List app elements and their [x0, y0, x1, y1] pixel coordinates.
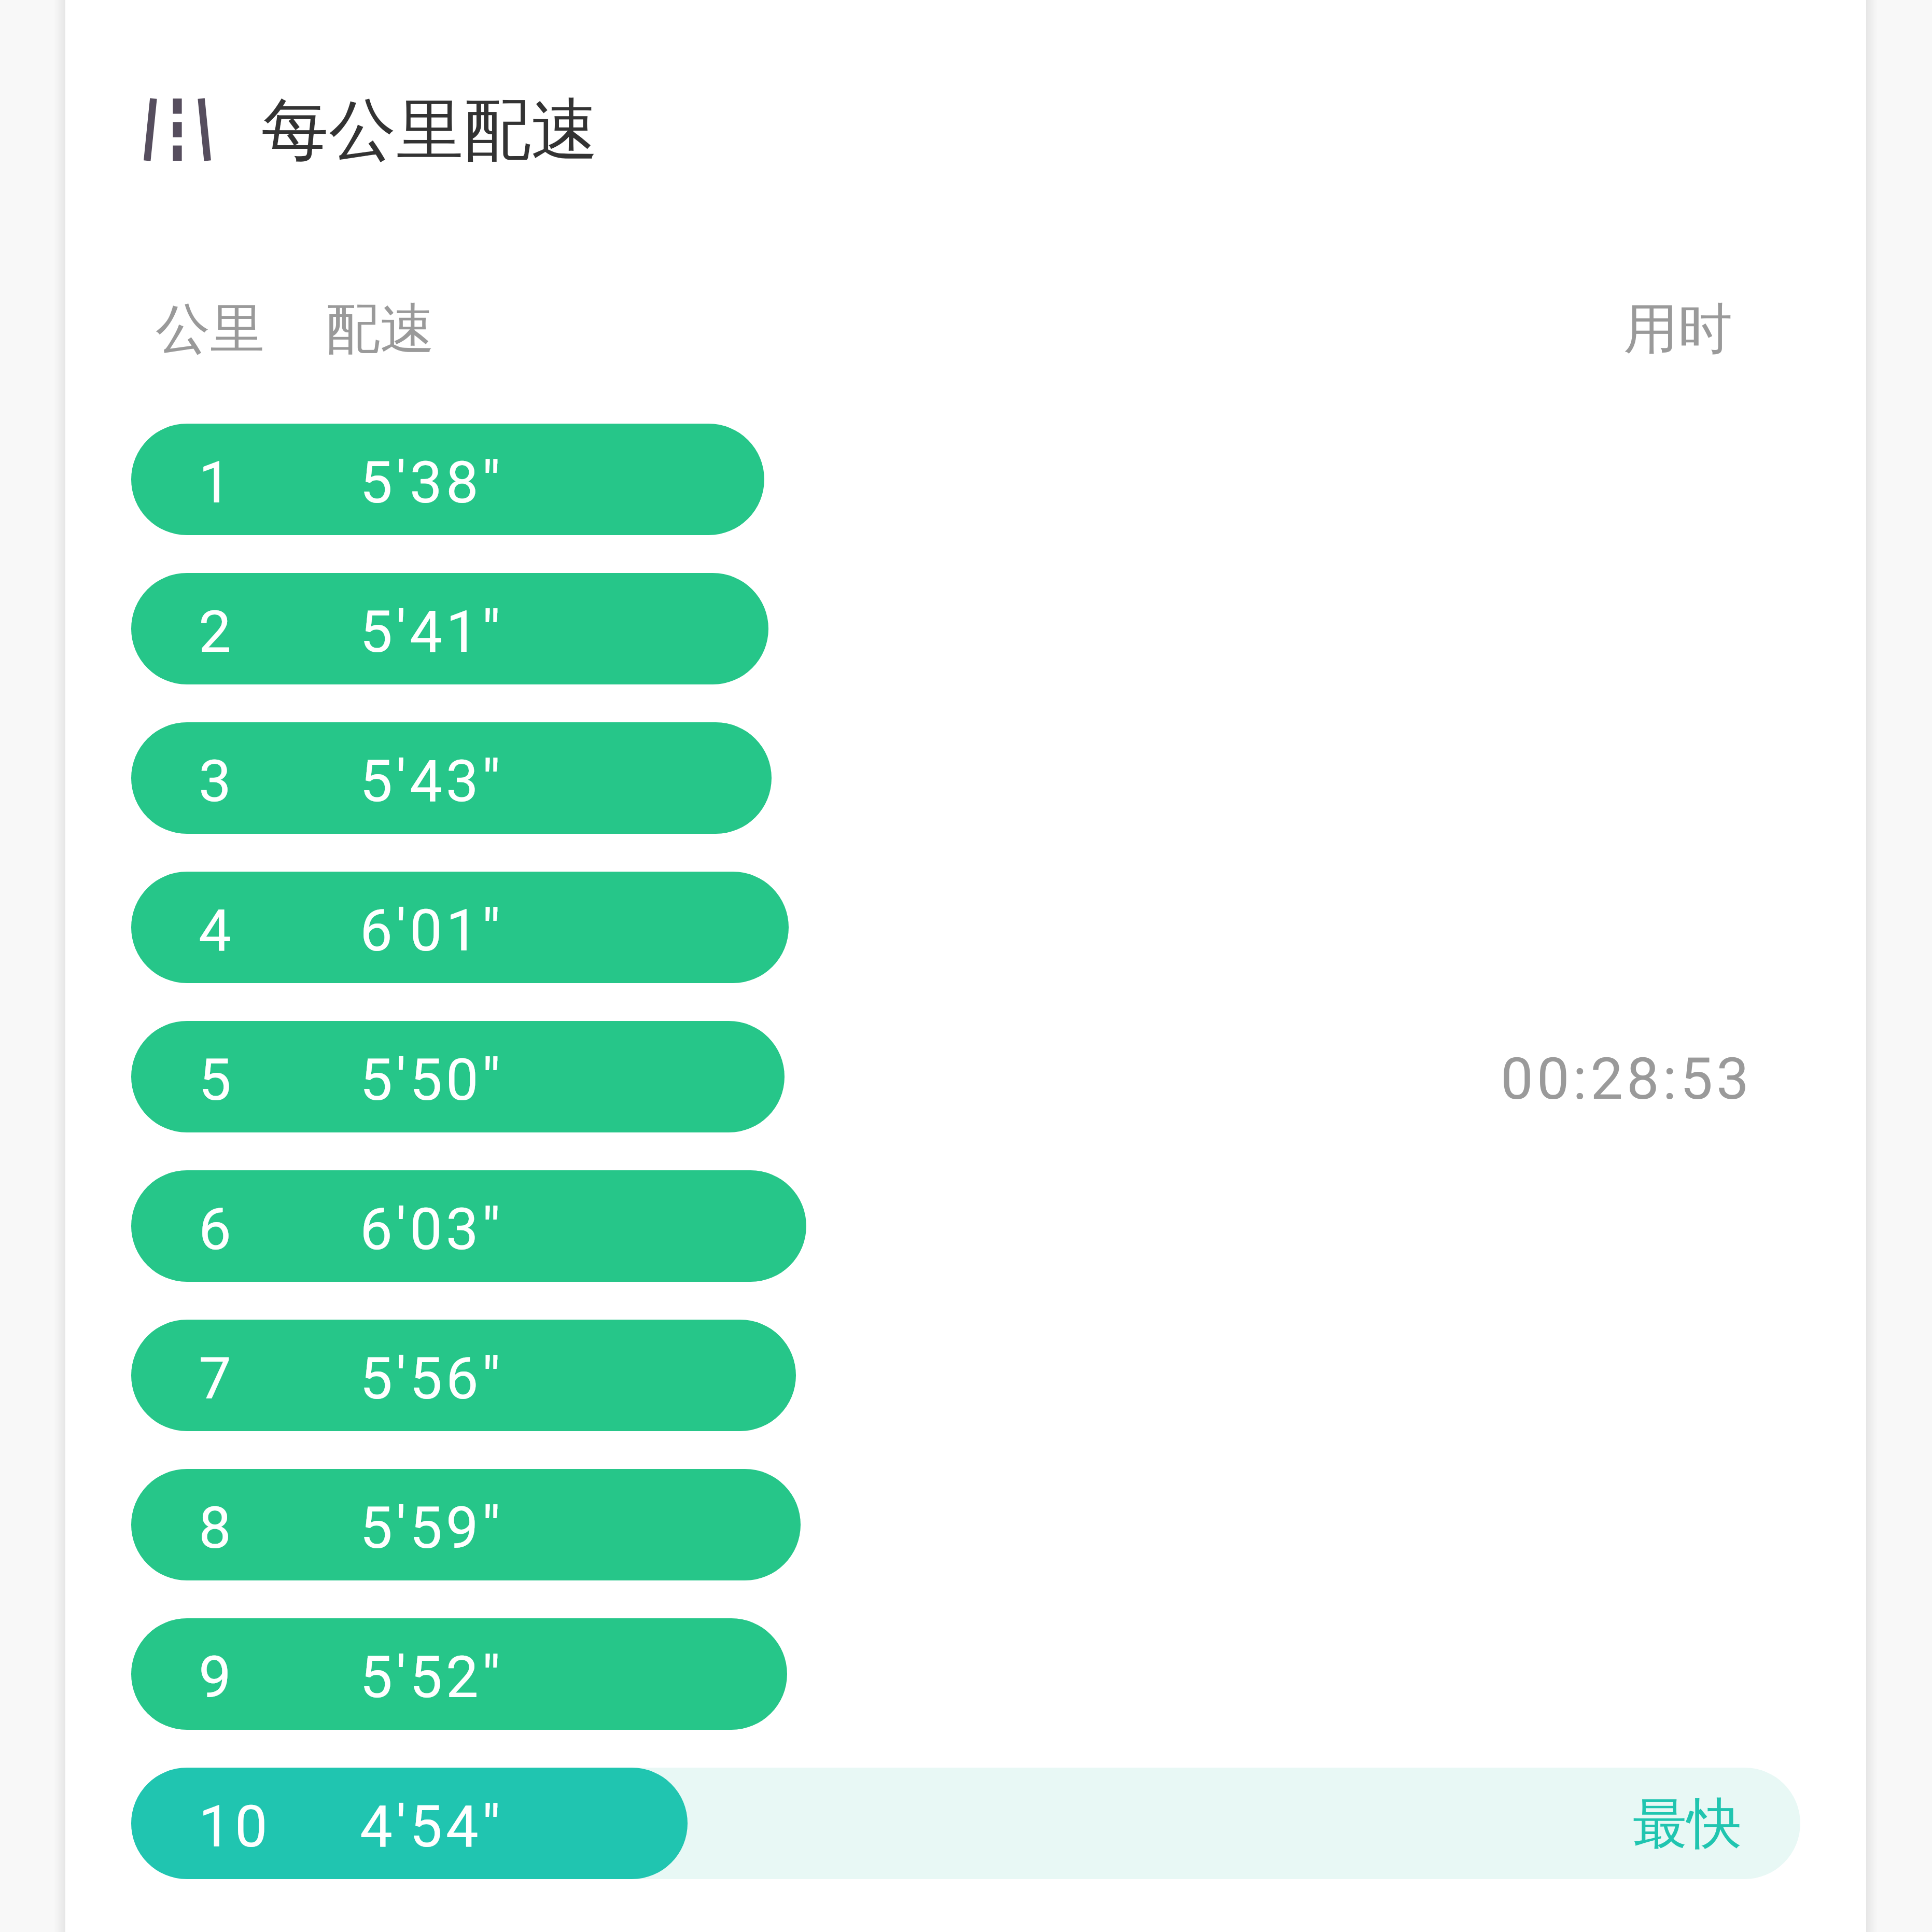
- button[interactable]: 3: [131, 722, 1800, 834]
- button[interactable]: Road: [130, 73, 622, 187]
- other: Road: [144, 99, 211, 161]
- staticText: 10: [199, 1793, 271, 1860]
- staticText: 5'56": [360, 1345, 504, 1412]
- staticText: 5'43": [360, 747, 504, 815]
- button[interactable]: 10: [131, 1768, 1800, 1879]
- staticText: 5'41": [360, 598, 504, 666]
- staticText: 最快: [1633, 1790, 1742, 1858]
- staticText: 2: [199, 598, 235, 666]
- staticText: 7: [199, 1345, 235, 1412]
- staticText: 5'59": [360, 1494, 504, 1562]
- button[interactable]: 5: [131, 1021, 1800, 1132]
- staticText: 00:28:53: [1501, 1045, 1753, 1113]
- staticText: 每公里配速: [261, 88, 598, 173]
- button[interactable]: 2: [131, 573, 1800, 684]
- staticText: 用时: [1623, 295, 1732, 363]
- staticText: 5'52": [360, 1643, 504, 1711]
- staticText: 3: [199, 747, 235, 815]
- button[interactable]: 6: [131, 1170, 1800, 1282]
- staticText: 6: [199, 1195, 235, 1263]
- staticText: 6'03": [360, 1195, 504, 1263]
- staticText: 9: [199, 1643, 235, 1711]
- button[interactable]: 7: [131, 1320, 1800, 1431]
- staticText: 公里: [156, 295, 264, 363]
- button[interactable]: 9: [131, 1618, 1800, 1730]
- staticText: 6'01": [360, 897, 504, 964]
- button[interactable]: 4: [131, 872, 1800, 983]
- staticText: 8: [199, 1494, 235, 1562]
- staticText: 5: [199, 1046, 235, 1114]
- staticText: 4'54": [360, 1793, 504, 1860]
- staticText: 配速: [326, 295, 435, 363]
- staticText: 5'50": [360, 1046, 504, 1114]
- staticText: 5'38": [360, 449, 504, 516]
- staticText: 1: [199, 449, 235, 516]
- button[interactable]: 1: [131, 424, 1800, 535]
- button[interactable]: 8: [131, 1469, 1800, 1580]
- staticText: 4: [199, 897, 235, 964]
